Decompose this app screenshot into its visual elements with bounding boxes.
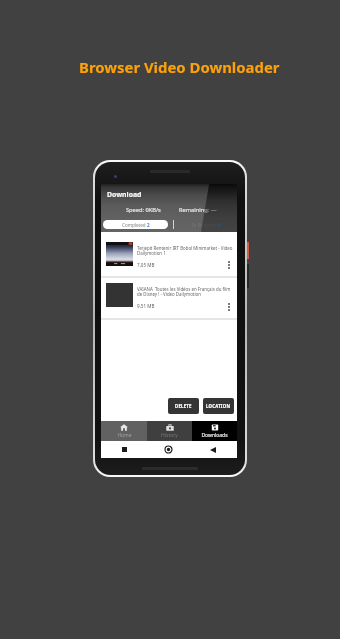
staticText: Home xyxy=(117,432,132,439)
staticText: Speed: 0KB/s xyxy=(126,206,161,214)
staticText: Completed xyxy=(122,222,147,228)
staticText: Download xyxy=(107,190,142,199)
staticText: 2 xyxy=(147,222,150,228)
button[interactable]: Home xyxy=(101,421,147,441)
staticText: VAIANA Toutes les Vidéos en Français du … xyxy=(137,286,236,298)
other: Home xyxy=(165,446,172,453)
button[interactable]: LOCATION xyxy=(203,398,234,414)
staticText: 0 xyxy=(218,222,221,228)
button[interactable]: History xyxy=(147,421,192,441)
staticText: Remaining: — xyxy=(179,206,217,214)
staticText: 7,05 MB xyxy=(137,262,155,268)
button[interactable]: More options xyxy=(224,301,234,313)
staticText: History xyxy=(161,432,178,439)
staticText: Downloads xyxy=(201,432,228,439)
button[interactable]: Completed xyxy=(103,220,168,229)
staticText: 9,51 MB xyxy=(137,303,155,309)
staticText: Terjepit Rentenir IRT Bobol Minimarket -… xyxy=(137,245,236,257)
button[interactable]: Downloads xyxy=(192,421,237,441)
staticText: LOCATION xyxy=(206,403,231,409)
button[interactable]: More options xyxy=(224,259,234,271)
button[interactable]: VAIANA Toutes les Vidéos en Français du … xyxy=(101,278,237,318)
button[interactable]: DELETE xyxy=(168,398,199,414)
staticText: In Progress xyxy=(192,222,218,228)
staticText: Browser Video Downloader xyxy=(79,57,280,77)
staticText: DELETE xyxy=(175,403,192,409)
other: Back xyxy=(210,447,216,453)
button[interactable]: In Progress xyxy=(176,220,237,229)
button[interactable]: Terjepit Rentenir IRT Bobol Minimarket -… xyxy=(101,232,237,276)
